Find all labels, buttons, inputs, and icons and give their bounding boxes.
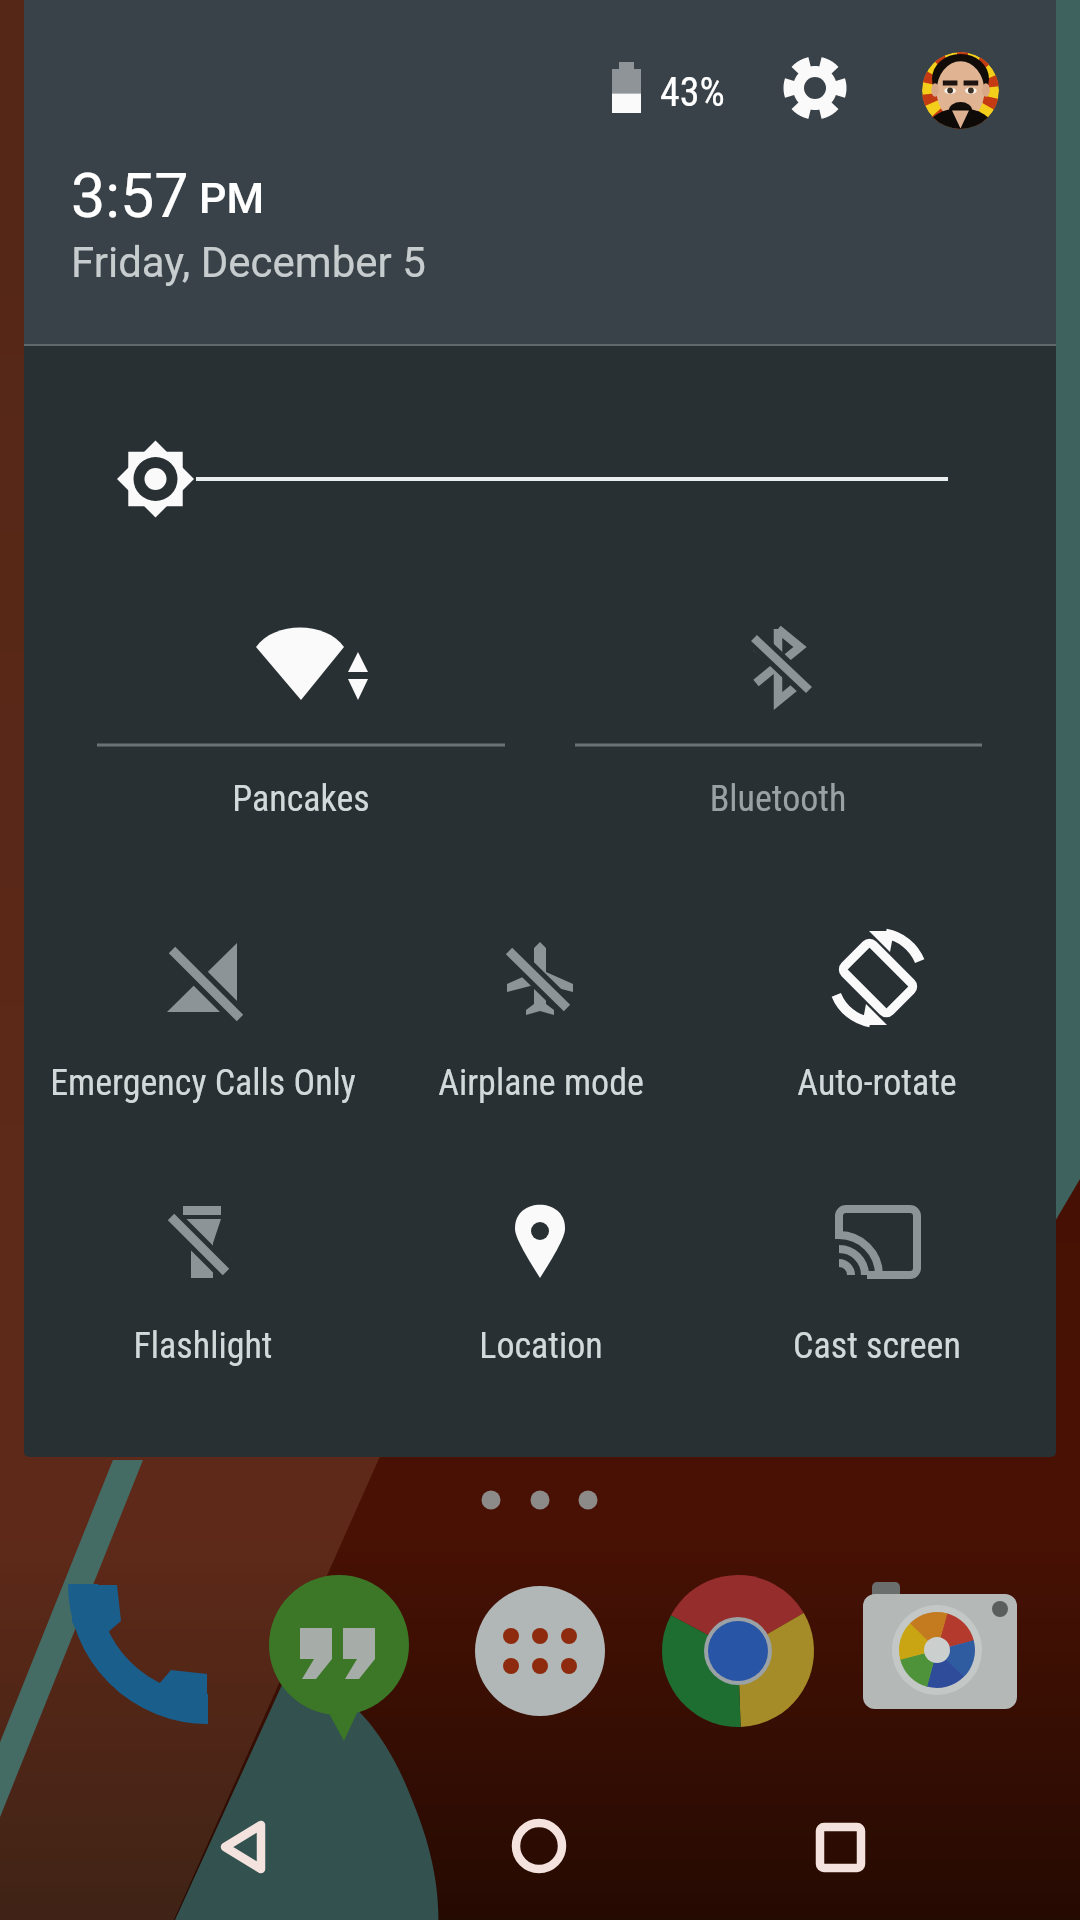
staticText: 3:57 <box>71 160 189 231</box>
button[interactable] <box>371 952 711 1142</box>
button[interactable] <box>371 1215 711 1405</box>
button[interactable] <box>608 668 948 858</box>
button[interactable]: User profile <box>922 52 999 129</box>
button[interactable]: Recent apps <box>770 1775 910 1905</box>
staticText: PM <box>199 173 265 223</box>
button[interactable]: Camera <box>865 1576 1015 1726</box>
button[interactable] <box>33 952 373 1142</box>
button[interactable] <box>33 1215 373 1405</box>
button[interactable]: Hangouts <box>264 1576 414 1726</box>
button[interactable] <box>707 1215 1047 1405</box>
button[interactable]: Back <box>168 1775 308 1905</box>
button[interactable]: Chrome <box>663 1576 813 1726</box>
button[interactable]: Apps <box>465 1576 615 1726</box>
staticText: Location <box>241 1325 841 1367</box>
button[interactable] <box>707 952 1047 1142</box>
staticText: Bluetooth <box>478 778 1056 820</box>
button[interactable]: Settings <box>771 54 848 131</box>
button[interactable]: Home <box>470 1775 610 1905</box>
staticText: Cast screen <box>577 1325 1056 1367</box>
staticText: Flashlight <box>24 1325 503 1367</box>
staticText: Airplane mode <box>241 1062 841 1104</box>
button[interactable] <box>131 668 471 858</box>
button[interactable]: Phone <box>65 1576 215 1726</box>
staticText: 43% <box>660 69 725 116</box>
staticText: Pancakes <box>24 778 601 820</box>
staticText: Emergency Calls Only <box>24 1062 503 1104</box>
staticText: Friday, December 5 <box>71 238 426 287</box>
staticText: Auto-rotate <box>577 1062 1056 1104</box>
